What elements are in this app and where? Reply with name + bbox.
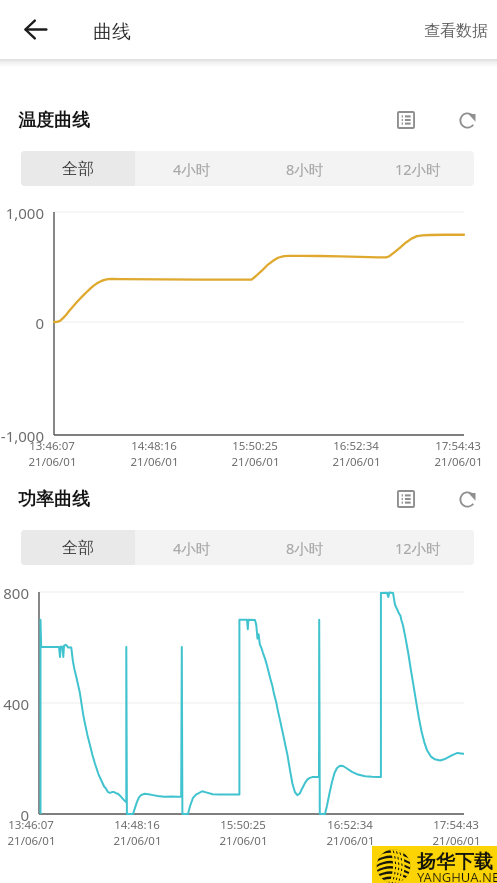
staticText: 15:50:25: [220, 817, 266, 833]
staticText: -1,000: [0, 426, 44, 446]
button[interactable]: Refresh: [450, 482, 484, 516]
button[interactable]: 4小时: [135, 530, 248, 565]
staticText: 12小时: [395, 538, 441, 558]
button[interactable]: 12小时: [361, 151, 474, 186]
staticText: 全部: [62, 538, 94, 558]
staticText: 0: [0, 805, 29, 825]
staticText: 8小时: [286, 159, 324, 179]
staticText: 21/06/01: [130, 454, 179, 470]
staticText: 13:46:07: [29, 438, 75, 454]
staticText: YANGHUA.NET: [417, 868, 497, 883]
staticText: 4小时: [173, 538, 211, 558]
button[interactable]: Refresh: [450, 103, 484, 137]
staticText: 21/06/01: [332, 454, 381, 470]
staticText: 400: [0, 694, 29, 714]
staticText: 15:50:25: [232, 438, 278, 454]
staticText: 21/06/01: [113, 833, 162, 849]
button[interactable]: 12小时: [361, 530, 474, 565]
button[interactable]: Show data table: [389, 103, 423, 137]
staticText: 14:48:16: [131, 438, 177, 454]
button[interactable]: 8小时: [248, 151, 361, 186]
button[interactable]: 查看数据: [412, 13, 497, 49]
staticText: 21/06/01: [28, 454, 77, 470]
staticText: 16:52:34: [327, 817, 373, 833]
staticText: 曲线: [93, 20, 131, 44]
staticText: 800: [0, 583, 29, 603]
staticText: 1,000: [0, 203, 44, 223]
button[interactable]: 4小时: [135, 151, 248, 186]
button[interactable]: Back: [19, 13, 52, 46]
button[interactable]: Show data table: [389, 482, 423, 516]
staticText: 8小时: [286, 538, 324, 558]
staticText: 21/06/01: [219, 833, 268, 849]
staticText: 全部: [62, 159, 94, 179]
staticText: 14:48:16: [114, 817, 160, 833]
staticText: 扬华下载: [417, 850, 493, 874]
button[interactable]: 全部: [21, 151, 135, 186]
staticText: 0: [0, 313, 44, 333]
staticText: 17:54:43: [433, 817, 479, 833]
button[interactable]: 全部: [21, 530, 135, 565]
staticText: 21/06/01: [434, 454, 483, 470]
staticText: 温度曲线: [18, 109, 90, 132]
staticText: 17:54:43: [435, 438, 481, 454]
staticText: 21/06/01: [326, 833, 375, 849]
staticText: 21/06/01: [231, 454, 280, 470]
staticText: 查看数据: [424, 21, 488, 41]
staticText: 功率曲线: [18, 488, 90, 511]
button[interactable]: 8小时: [248, 530, 361, 565]
staticText: 16:52:34: [333, 438, 379, 454]
staticText: 21/06/01: [432, 833, 481, 849]
staticText: 12小时: [395, 159, 441, 179]
staticText: 4小时: [173, 159, 211, 179]
staticText: 13:46:07: [8, 817, 54, 833]
staticText: 21/06/01: [7, 833, 56, 849]
